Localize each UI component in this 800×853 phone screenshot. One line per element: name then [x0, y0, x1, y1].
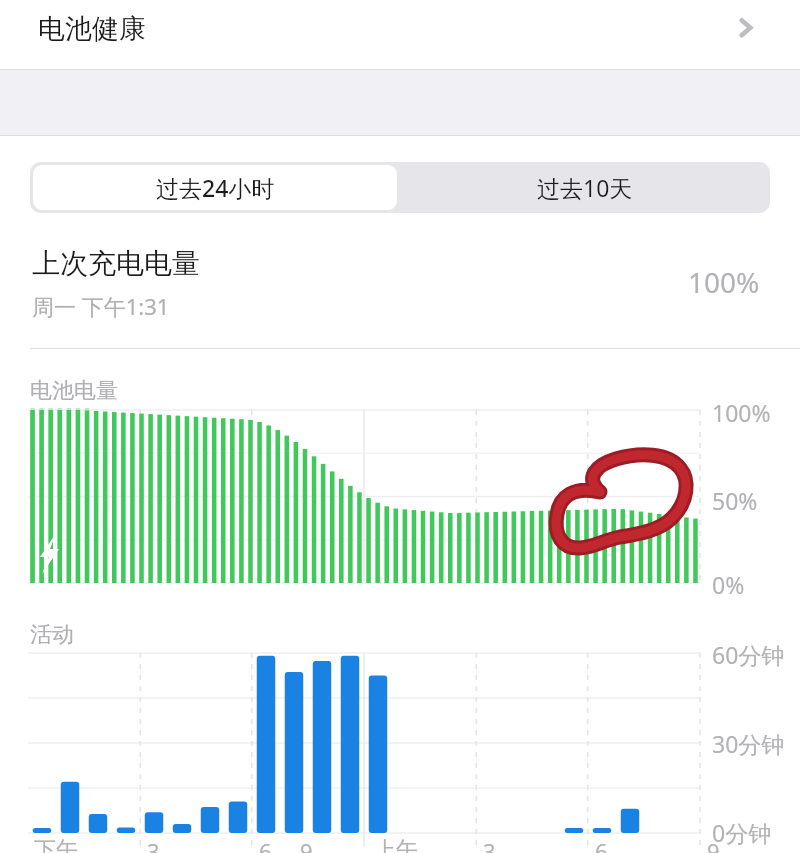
- staticText: 电池电量: [30, 377, 118, 405]
- staticText: 活动: [30, 621, 74, 649]
- staticText: 50%: [712, 485, 758, 516]
- other: 打开电池健康: [730, 9, 766, 45]
- staticText: 0%: [712, 569, 745, 600]
- staticText: 3: [147, 836, 160, 853]
- staticText: 60分钟: [712, 639, 785, 670]
- staticText: 9: [300, 836, 313, 853]
- button[interactable]: 电池健康: [0, 0, 800, 69]
- button[interactable]: 过去10天: [400, 162, 770, 213]
- staticText: 上午: [374, 836, 418, 853]
- staticText: 3: [483, 836, 496, 853]
- staticText: 0分钟: [712, 817, 772, 848]
- staticText: 过去10天: [537, 172, 633, 203]
- staticText: 上次充电电量: [32, 246, 200, 281]
- button[interactable]: 过去24小时: [33, 165, 397, 210]
- staticText: 30分钟: [712, 728, 785, 759]
- staticText: 下午: [34, 836, 78, 853]
- staticText: 9: [707, 836, 720, 853]
- staticText: 过去24小时: [156, 172, 275, 203]
- staticText: 6: [595, 836, 608, 853]
- staticText: 100%: [712, 397, 771, 428]
- staticText: 电池健康: [38, 12, 146, 46]
- staticText: 100%: [688, 263, 760, 301]
- staticText: 6: [259, 836, 272, 853]
- staticText: 周一 下午1:31: [32, 291, 170, 321]
